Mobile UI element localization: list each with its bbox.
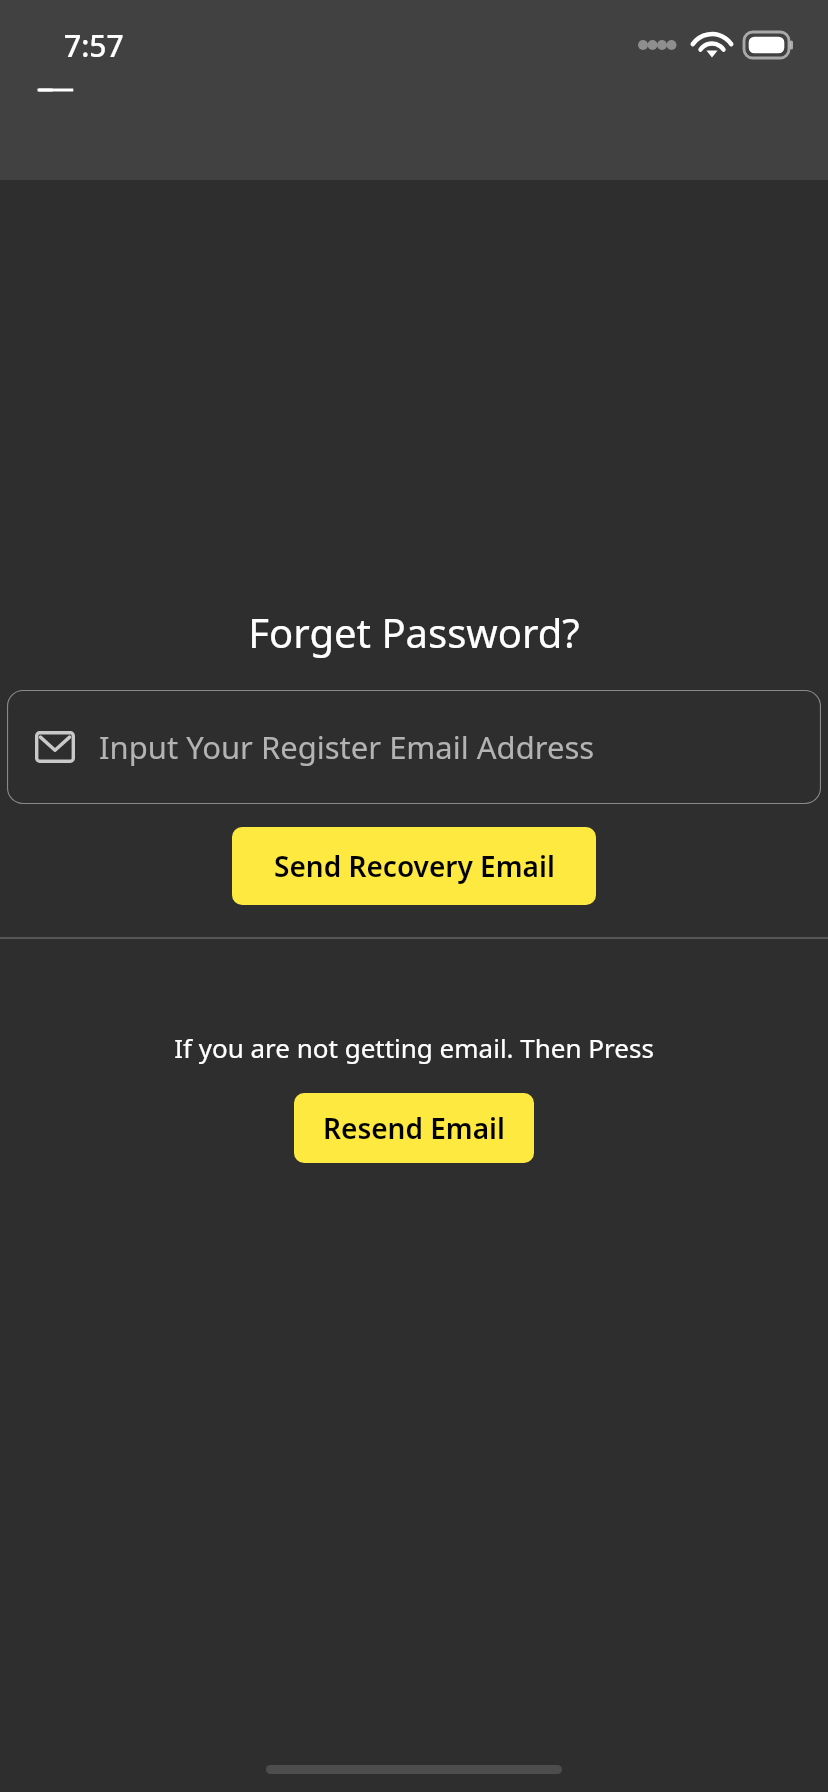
staticText: Resend Email [323, 1109, 505, 1147]
staticText: 7:57 [64, 25, 124, 66]
staticText: Send Recovery Email [274, 847, 555, 885]
staticText: If you are not getting email. Then Press [0, 1030, 828, 1065]
button[interactable]: Input Your Register Email Address [7, 690, 821, 804]
staticText: Input Your Register Email Address [99, 726, 595, 768]
staticText: Forget Password? [0, 605, 828, 659]
button[interactable]: Send Recovery Email [232, 827, 596, 905]
button[interactable]: Resend Email [294, 1093, 534, 1163]
